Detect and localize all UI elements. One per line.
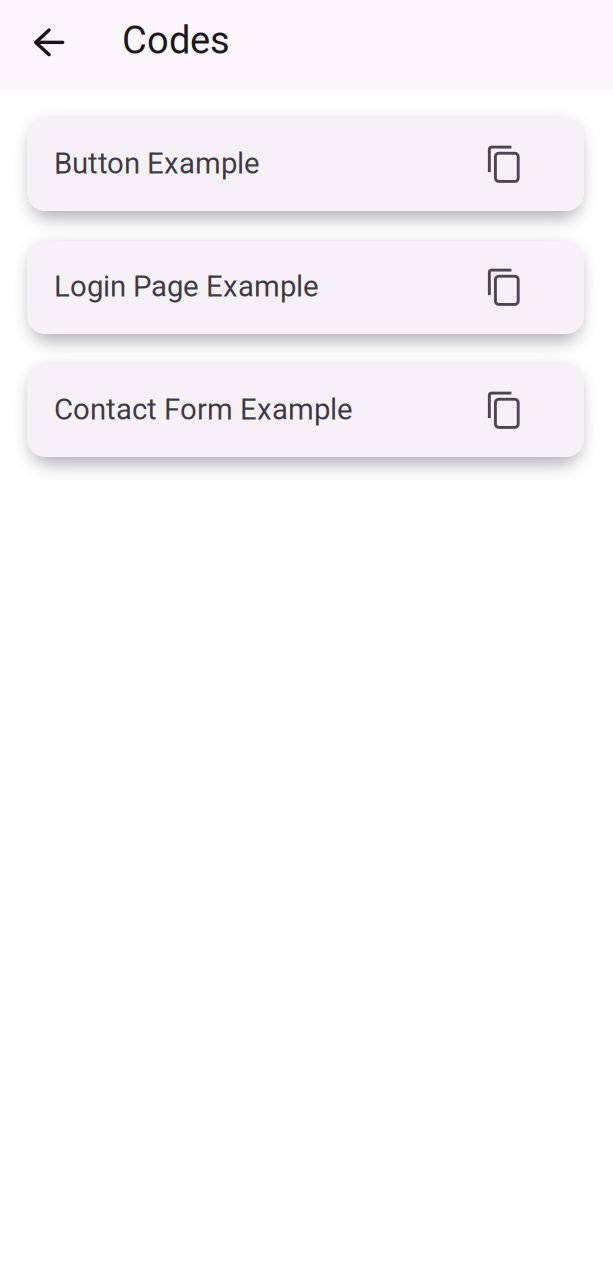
staticText: Codes <box>122 18 230 63</box>
staticText: Contact Form Example <box>54 392 353 427</box>
button[interactable]: Copy Contact Form Example <box>488 392 520 429</box>
button[interactable]: Copy Button Example <box>488 146 520 183</box>
button[interactable]: Contact Form Example <box>27 364 584 457</box>
button[interactable]: Login Page Example <box>27 241 584 334</box>
button[interactable]: Button Example <box>27 118 584 211</box>
button[interactable]: Copy Login Page Example <box>488 269 520 306</box>
button[interactable]: Back <box>25 18 73 70</box>
staticText: Login Page Example <box>54 269 319 304</box>
staticText: Button Example <box>54 146 260 181</box>
